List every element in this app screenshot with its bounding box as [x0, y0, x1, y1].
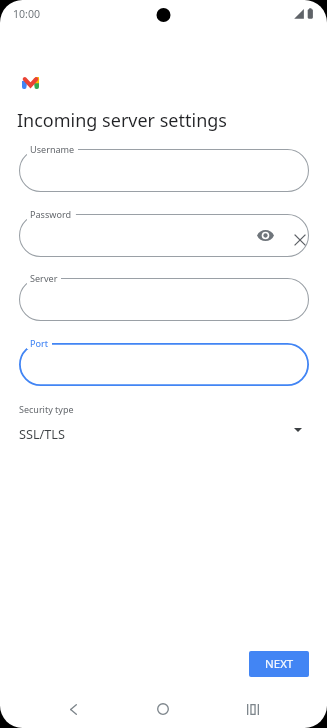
staticText: Port [30, 337, 49, 349]
staticText: 10:00 [13, 7, 41, 21]
button[interactable]: Security type [0, 400, 327, 450]
staticText: Username [30, 143, 75, 155]
staticText: Server [30, 272, 58, 284]
button[interactable]: Home [141, 690, 185, 728]
button[interactable]: Clear [295, 235, 305, 245]
button[interactable] [19, 278, 309, 321]
button[interactable] [19, 343, 309, 386]
button[interactable]: Back [51, 690, 95, 728]
staticText: NEXT [265, 656, 294, 672]
button[interactable] [19, 149, 309, 192]
staticText: Password [30, 208, 72, 220]
button[interactable]: Show password [19, 214, 309, 257]
button[interactable]: NEXT [249, 651, 309, 677]
button[interactable]: Show password [257, 230, 274, 241]
staticText: Incoming server settings [17, 108, 227, 133]
button[interactable]: Recent apps [231, 690, 275, 728]
staticText: SSL/TLS [19, 425, 65, 442]
staticText: Security type [19, 403, 74, 415]
